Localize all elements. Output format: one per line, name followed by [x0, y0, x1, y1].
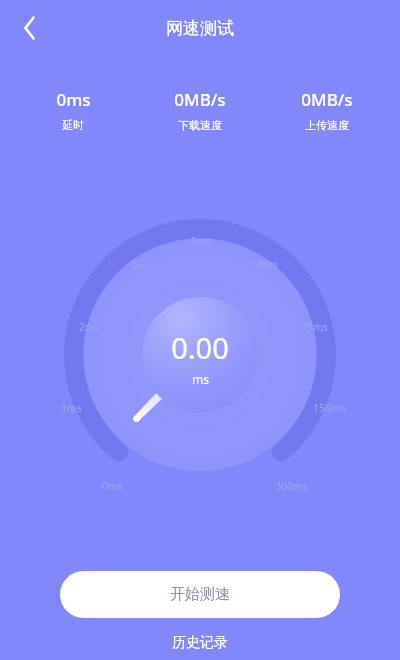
button[interactable]: 0MB/s	[263, 88, 390, 132]
staticText: 75ms	[301, 320, 328, 334]
staticText: 150ms	[313, 401, 346, 415]
staticText: 0ms	[102, 479, 123, 493]
staticText: 0.00	[171, 328, 229, 367]
staticText: 0MB/s	[174, 88, 226, 111]
staticText: 历史记录	[172, 634, 228, 652]
staticText: 0MB/s	[301, 88, 353, 111]
staticText: 上传速度	[305, 118, 349, 132]
staticText: 网速测试	[166, 18, 234, 39]
button[interactable]: 开始测速	[60, 571, 340, 618]
staticText: 延时	[62, 118, 84, 132]
staticText: 下载速度	[178, 118, 222, 132]
button[interactable]: Back	[8, 6, 52, 50]
button[interactable]: 0ms	[10, 88, 136, 132]
staticText: 1ms	[61, 401, 82, 415]
button[interactable]: 0MB/s	[136, 88, 263, 132]
staticText: 开始测速	[170, 585, 230, 604]
staticText: 5ms	[191, 234, 212, 248]
staticText: 3ms	[131, 259, 152, 273]
staticText: 300ms	[275, 479, 308, 493]
staticText: 2ms	[79, 320, 100, 334]
staticText: 0ms	[56, 88, 91, 111]
button[interactable]: 历史记录	[154, 628, 246, 658]
staticText: ms	[192, 371, 209, 387]
staticText: 50ms	[251, 257, 278, 271]
